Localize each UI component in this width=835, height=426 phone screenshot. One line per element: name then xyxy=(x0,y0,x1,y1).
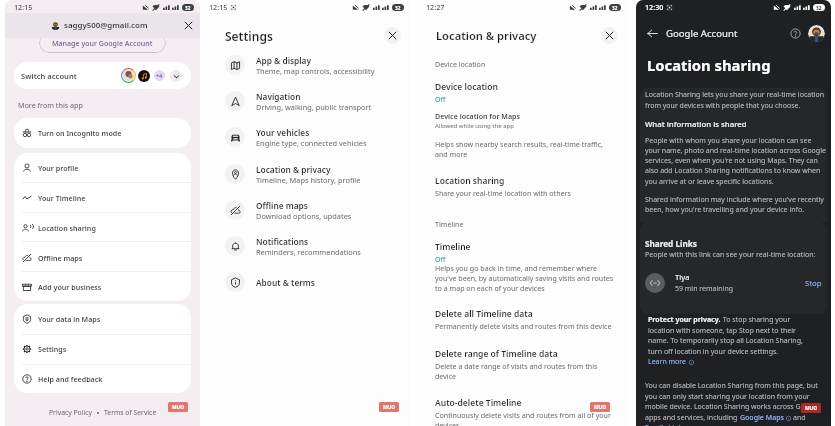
button[interactable]: Close xyxy=(384,27,401,44)
staticText: 12:15 xyxy=(14,2,33,12)
button[interactable]: Navigation xyxy=(200,88,410,114)
staticText: Helps show nearby search results, real-t… xyxy=(435,139,604,149)
staticText: People with this link can see your real-… xyxy=(645,250,816,260)
staticText: Stop xyxy=(805,278,822,289)
button[interactable]: Timeline xyxy=(417,240,627,290)
staticText: Your data in Maps xyxy=(38,314,101,324)
button[interactable]: Location sharing xyxy=(14,213,191,243)
staticText: Location & privacy xyxy=(436,28,537,43)
staticText: Google Account xyxy=(666,27,738,40)
staticText: Allowed while using the app xyxy=(435,122,514,130)
staticText: Download options, updates xyxy=(256,211,352,221)
staticText: Switch account xyxy=(21,71,77,81)
button[interactable]: Family Link xyxy=(645,423,683,426)
staticText: MUO xyxy=(172,404,184,411)
staticText: Delete all Timeline data xyxy=(435,308,533,320)
staticText: from your devices with people that you c… xyxy=(645,101,801,111)
staticText: Your vehicles xyxy=(256,127,310,138)
staticText: location with someone, tap Stop next to … xyxy=(648,326,796,336)
staticText: Add your business xyxy=(38,282,102,292)
staticText: About & terms xyxy=(256,277,315,288)
staticText: 32 xyxy=(185,5,191,11)
staticText: Engine type, connected vehicles xyxy=(256,138,367,148)
button[interactable]: Your data in Maps xyxy=(14,304,191,334)
staticText: Navigation xyxy=(256,91,301,102)
button[interactable]: Stop xyxy=(802,275,825,292)
staticText: Device location xyxy=(435,59,486,69)
staticText: Off xyxy=(435,254,446,264)
staticText: 12:30 xyxy=(645,2,664,12)
staticText: and xyxy=(793,413,806,423)
staticText: 32 xyxy=(395,5,401,11)
button[interactable]: Device location for Maps xyxy=(417,110,627,132)
button[interactable]: Settings xyxy=(14,334,191,364)
staticText: You can disable Location Sharing from th… xyxy=(645,381,818,391)
staticText: To stop sharing your xyxy=(721,315,791,325)
staticText: Shared Links xyxy=(645,238,697,249)
staticText: devices xyxy=(435,420,460,426)
button[interactable]: Your vehicles xyxy=(200,124,410,150)
button[interactable]: Location sharing xyxy=(417,174,627,196)
button[interactable]: Your Timeline xyxy=(14,183,191,213)
staticText: Auto-delete Timeline xyxy=(435,397,522,409)
staticText: Delete range of Timeline data xyxy=(435,348,558,360)
button[interactable]: App & display xyxy=(200,52,410,78)
staticText: 32 xyxy=(612,5,618,11)
button[interactable]: Add your business xyxy=(14,273,191,301)
staticText: you arrive at or leave specific location… xyxy=(645,177,774,187)
button[interactable]: Help xyxy=(789,27,802,40)
staticText: apps and services, including xyxy=(645,413,740,423)
staticText: to a map on each of your devices xyxy=(435,283,545,293)
staticText: Your Timeline xyxy=(38,193,86,203)
staticText: 12:15 xyxy=(209,2,228,12)
button[interactable]: Offline maps xyxy=(200,197,410,223)
staticText: Reminders, recommendations xyxy=(256,247,361,257)
staticText: saggy500@gmail.com xyxy=(64,20,148,31)
staticText: Offline maps xyxy=(38,253,83,263)
staticText: turn off location in your device setting… xyxy=(648,347,779,357)
button[interactable]: Close xyxy=(181,18,196,33)
button[interactable]: Switch account xyxy=(14,62,191,89)
staticText: Timeline xyxy=(435,241,471,253)
staticText: mobile device. Location Sharing works ac… xyxy=(645,402,820,412)
button[interactable]: Close xyxy=(601,27,618,44)
staticText: Manage your Google Account xyxy=(52,38,153,48)
button[interactable]: Help and feedback xyxy=(14,364,191,393)
button[interactable]: About & terms xyxy=(200,269,410,295)
button[interactable]: Location & privacy xyxy=(200,161,410,187)
button[interactable]: Offline maps xyxy=(14,243,191,273)
button[interactable]: Learn more xyxy=(648,357,694,367)
staticText: device xyxy=(435,371,457,381)
staticText: 32 xyxy=(816,5,822,11)
button[interactable]: Delete range of Timeline data xyxy=(417,347,627,379)
staticText: Location sharing xyxy=(38,223,96,233)
staticText: Location Sharing lets you share your rea… xyxy=(645,90,825,100)
staticText: Off xyxy=(435,94,446,104)
button[interactable]: Google Maps xyxy=(740,413,784,423)
button[interactable]: Manage your Google Account xyxy=(39,33,166,53)
button[interactable]: Notifications xyxy=(200,233,410,259)
staticText: Shared information may include where you… xyxy=(645,195,824,205)
button[interactable]: Expand xyxy=(170,70,182,82)
button[interactable]: Your profile xyxy=(14,153,191,183)
staticText: 12:27 xyxy=(426,2,445,12)
staticText: you can only start sharing your location… xyxy=(645,392,810,402)
button[interactable]: Device location xyxy=(417,80,627,102)
staticText: Share your real-time location with other… xyxy=(435,188,571,198)
staticText: Theme, map controls, accessibility xyxy=(256,66,375,76)
staticText: Helps you go back in time, and remember … xyxy=(435,263,598,273)
button[interactable]: Auto-delete Timeline xyxy=(417,396,627,426)
staticText: Device location xyxy=(435,81,498,93)
button[interactable]: Terms of Service xyxy=(104,408,157,417)
staticText: 59 min remaining xyxy=(675,284,734,294)
button[interactable]: Back xyxy=(645,26,659,40)
button[interactable]: Delete all Timeline data xyxy=(417,307,627,329)
staticText: Settings xyxy=(225,28,273,44)
staticText: App & display xyxy=(256,55,312,66)
staticText: MUO xyxy=(383,404,395,411)
staticText: been, how you're travelling and your dev… xyxy=(645,205,805,215)
button[interactable]: Privacy Policy xyxy=(49,408,92,417)
button[interactable]: Turn on Incognito mode xyxy=(14,118,191,148)
staticText: MUO xyxy=(805,405,817,412)
staticText: More from this app xyxy=(18,100,83,110)
